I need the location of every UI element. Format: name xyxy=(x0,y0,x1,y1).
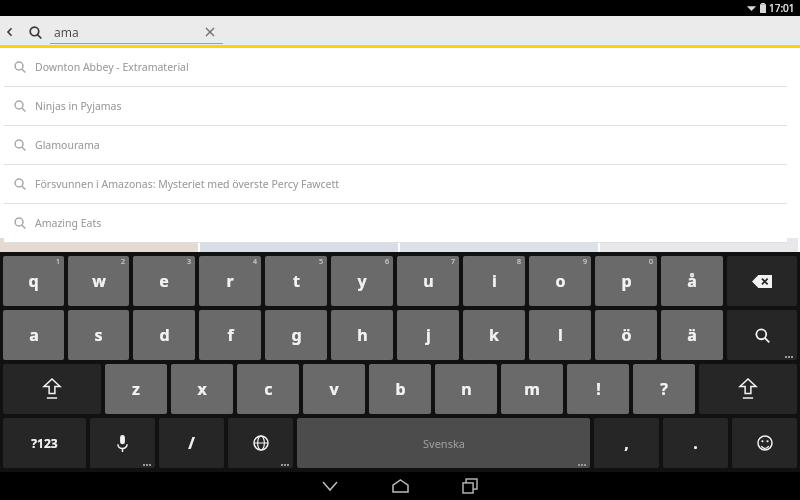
staticText: 0 xyxy=(649,257,654,267)
staticText: ?123 xyxy=(31,435,58,451)
button[interactable]: c xyxy=(237,364,299,414)
staticText: i xyxy=(492,270,497,292)
button[interactable]: Recent apps xyxy=(435,472,505,500)
staticText: o xyxy=(555,270,566,292)
button[interactable]: s xyxy=(68,310,129,360)
button[interactable]: . xyxy=(663,418,728,468)
button[interactable]: Clear xyxy=(197,19,223,45)
staticText: y xyxy=(357,270,367,292)
staticText: j xyxy=(426,324,431,346)
button[interactable]: ?123 xyxy=(3,418,86,468)
button[interactable]: 2 xyxy=(68,256,129,306)
button[interactable]: m xyxy=(501,364,563,414)
button[interactable]: Change language xyxy=(228,418,293,468)
button[interactable]: k xyxy=(463,310,525,360)
button[interactable]: ä xyxy=(661,310,723,360)
button[interactable]: Amazing Eats xyxy=(4,204,787,242)
button[interactable]: 1 xyxy=(3,256,64,306)
staticText: b xyxy=(395,378,406,400)
button[interactable]: d xyxy=(133,310,195,360)
button[interactable]: j xyxy=(397,310,459,360)
button[interactable]: f xyxy=(199,310,261,360)
button[interactable]: Search xyxy=(20,16,50,48)
staticText: Downton Abbey - Extramaterial xyxy=(35,60,189,74)
staticText: 9 xyxy=(583,257,588,267)
staticText: h xyxy=(357,324,368,346)
button[interactable]: Emoji xyxy=(732,418,797,468)
button[interactable]: Downton Abbey - Extramaterial xyxy=(4,48,787,86)
button[interactable]: ! xyxy=(567,364,629,414)
button[interactable]: Hide keyboard xyxy=(295,472,365,500)
staticText: Svenska xyxy=(423,436,465,451)
staticText: ? xyxy=(660,378,668,400)
staticText: z xyxy=(132,378,140,400)
button[interactable]: n xyxy=(435,364,497,414)
button[interactable]: , xyxy=(594,418,659,468)
staticText: u xyxy=(423,270,434,292)
button[interactable]: h xyxy=(331,310,393,360)
button[interactable]: a xyxy=(3,310,64,360)
staticText: ä xyxy=(687,324,697,346)
staticText: , xyxy=(624,432,629,454)
button[interactable]: 5 xyxy=(265,256,327,306)
staticText: 4 xyxy=(253,257,258,267)
button[interactable]: 4 xyxy=(199,256,261,306)
staticText: Amazing Eats xyxy=(35,216,102,230)
staticText: 8 xyxy=(517,257,522,267)
button[interactable]: Shift xyxy=(3,364,101,414)
staticText: / xyxy=(188,432,195,454)
button[interactable]: Shift xyxy=(699,364,797,414)
staticText: ö xyxy=(621,324,632,346)
button[interactable]: Glamourama xyxy=(4,126,787,164)
staticText: g xyxy=(291,324,302,346)
button[interactable]: / xyxy=(159,418,224,468)
button[interactable]: Search xyxy=(727,310,797,360)
button[interactable]: Back xyxy=(0,16,20,48)
staticText: Försvunnen i Amazonas: Mysteriet med öve… xyxy=(35,177,340,191)
button[interactable]: g xyxy=(265,310,327,360)
button[interactable]: l xyxy=(529,310,591,360)
button[interactable]: Svenska xyxy=(297,418,590,468)
button[interactable]: ö xyxy=(595,310,657,360)
button[interactable]: b xyxy=(369,364,431,414)
staticText: q xyxy=(28,270,39,292)
button[interactable]: 6 xyxy=(331,256,393,306)
staticText: m xyxy=(524,378,540,400)
button[interactable]: v xyxy=(303,364,365,414)
staticText: å xyxy=(687,270,697,292)
staticText: ama xyxy=(54,24,79,40)
staticText: k xyxy=(489,324,499,346)
button[interactable]: Delete xyxy=(727,256,797,306)
staticText: 2 xyxy=(121,257,126,267)
staticText: c xyxy=(264,378,273,400)
staticText: n xyxy=(461,378,472,400)
staticText: d xyxy=(159,324,170,346)
button[interactable]: 3 xyxy=(133,256,195,306)
button[interactable]: Försvunnen i Amazonas: Mysteriet med öve… xyxy=(4,165,787,203)
button[interactable]: 8 xyxy=(463,256,525,306)
button[interactable]: å xyxy=(661,256,723,306)
staticText: ! xyxy=(596,378,601,400)
button[interactable]: 7 xyxy=(397,256,459,306)
button[interactable]: z xyxy=(105,364,167,414)
button[interactable]: Ninjas in Pyjamas xyxy=(4,87,787,125)
button[interactable]: 9 xyxy=(529,256,591,306)
button[interactable]: 0 xyxy=(595,256,657,306)
button[interactable]: ? xyxy=(633,364,695,414)
staticText: a xyxy=(29,324,39,346)
staticText: . xyxy=(693,432,698,454)
staticText: f xyxy=(227,324,234,346)
staticText: Glamourama xyxy=(35,138,100,152)
staticText: r xyxy=(226,270,234,292)
staticText: 3 xyxy=(187,257,192,267)
staticText: s xyxy=(94,324,103,346)
staticText: v xyxy=(329,378,339,400)
staticText: 17:01 xyxy=(769,1,795,15)
staticText: 6 xyxy=(385,257,390,267)
button[interactable]: Voice input xyxy=(90,418,155,468)
staticText: w xyxy=(92,270,106,292)
button[interactable]: Home xyxy=(365,472,435,500)
staticText: l xyxy=(558,324,563,346)
button[interactable]: x xyxy=(171,364,233,414)
staticText: e xyxy=(159,270,169,292)
